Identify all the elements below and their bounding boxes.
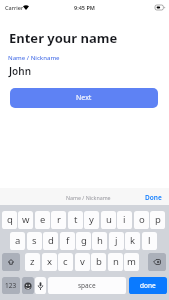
staticText: m [127, 255, 136, 268]
staticText: Carrier [5, 4, 24, 11]
button[interactable]: t [68, 211, 83, 229]
staticText: Done [145, 193, 162, 202]
staticText: l [148, 234, 151, 247]
staticText: r [57, 213, 61, 226]
button[interactable]: d [43, 232, 58, 250]
button[interactable]: v [75, 253, 90, 271]
button[interactable]: w [18, 211, 33, 229]
button[interactable]: h [92, 232, 107, 250]
button[interactable]: u [101, 211, 116, 229]
staticText: Next [76, 93, 92, 103]
staticText: done [140, 281, 156, 290]
staticText: g [81, 234, 87, 247]
button[interactable]: j [109, 232, 124, 250]
button[interactable]: space [48, 277, 126, 294]
staticText: Enter your name [9, 29, 118, 47]
button[interactable]: r [51, 211, 66, 229]
button[interactable]: c [58, 253, 73, 271]
staticText: f [66, 234, 70, 247]
button[interactable]: f [60, 232, 75, 250]
staticText: i [123, 213, 126, 226]
button[interactable]: k [125, 232, 140, 250]
staticText: d [48, 234, 54, 247]
staticText: j [115, 234, 118, 247]
button[interactable]: m [124, 253, 139, 271]
button[interactable]: i [117, 211, 132, 229]
staticText: space [78, 281, 96, 290]
staticText: p [155, 213, 161, 226]
button[interactable]: o [134, 211, 149, 229]
staticText: t [74, 213, 78, 226]
button[interactable]: Backspace [148, 253, 166, 271]
button[interactable]: y [84, 211, 99, 229]
staticText: x [47, 255, 53, 268]
button[interactable]: l [142, 232, 157, 250]
staticText: z [30, 255, 35, 268]
button[interactable]: x [42, 253, 57, 271]
staticText: k [130, 234, 136, 247]
staticText: u [106, 213, 112, 226]
button[interactable]: done [129, 277, 167, 294]
staticText: Name / Nickname [8, 54, 60, 62]
button[interactable]: n [108, 253, 123, 271]
button[interactable]: g [76, 232, 91, 250]
button[interactable]: z [25, 253, 40, 271]
staticText: h [97, 234, 103, 247]
staticText: n [113, 255, 119, 268]
staticText: y [89, 213, 94, 226]
button[interactable]: Done [145, 193, 162, 202]
button[interactable]: e [35, 211, 50, 229]
button[interactable]: s [27, 232, 42, 250]
button[interactable]: q [2, 211, 17, 229]
staticText: s [32, 234, 37, 247]
staticText: w [22, 213, 30, 226]
button[interactable]: Emoji [22, 277, 34, 294]
staticText: a [15, 234, 21, 247]
button[interactable]: b [91, 253, 106, 271]
staticText: 123 [5, 281, 17, 290]
staticText: 9:45 PM [74, 4, 95, 11]
staticText: John [9, 64, 32, 78]
staticText: e [40, 213, 46, 226]
button[interactable]: p [150, 211, 165, 229]
button[interactable]: a [10, 232, 25, 250]
staticText: o [139, 213, 145, 226]
staticText: q [7, 213, 13, 226]
button[interactable]: 123 [2, 277, 20, 294]
button[interactable]: Next [10, 88, 158, 108]
button[interactable]: Shift [2, 253, 20, 271]
staticText: c [63, 255, 68, 268]
staticText: b [96, 255, 102, 268]
button[interactable]: Dictation [35, 277, 46, 294]
staticText: v [80, 255, 85, 268]
staticText: Name / Nickname [66, 194, 111, 201]
